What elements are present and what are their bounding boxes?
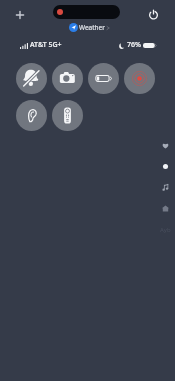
staticText: Ayb bbox=[160, 226, 171, 234]
button[interactable]: Favourites bbox=[161, 141, 170, 150]
button[interactable]: Add bbox=[15, 10, 25, 20]
button[interactable]: Current page bbox=[161, 162, 170, 171]
button[interactable]: Music bbox=[161, 183, 170, 192]
button[interactable]: Weather bbox=[69, 23, 110, 32]
staticText: 76% bbox=[127, 40, 141, 50]
button[interactable]: Silent mode bbox=[16, 63, 47, 94]
button[interactable]: Hearing bbox=[16, 100, 47, 131]
button[interactable]: Screen record bbox=[124, 63, 155, 94]
button[interactable]: Home bbox=[161, 204, 170, 213]
staticText: Weather bbox=[79, 23, 105, 32]
button[interactable]: Power bbox=[148, 9, 159, 20]
button[interactable]: Camera bbox=[52, 63, 83, 94]
staticText: AT&T 5G+ bbox=[30, 40, 62, 50]
button[interactable]: Low power mode bbox=[88, 63, 119, 94]
button[interactable]: Remote bbox=[52, 100, 83, 131]
